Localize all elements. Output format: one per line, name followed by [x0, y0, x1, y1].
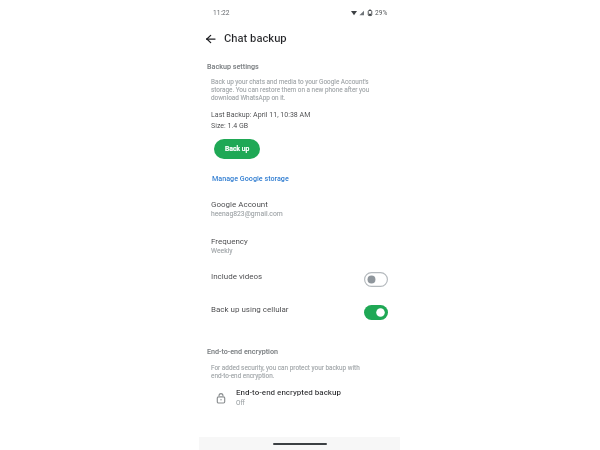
- staticText: heenag823@gmail.com: [211, 210, 283, 218]
- button[interactable]: Frequency: [199, 236, 400, 256]
- staticText: Off: [236, 399, 245, 407]
- staticText: 11:22: [213, 9, 230, 17]
- button[interactable]: Manage Google storage: [212, 174, 289, 182]
- staticText: Weekly: [211, 247, 233, 255]
- staticText: 29%: [375, 9, 388, 17]
- staticText: Include videos: [211, 272, 364, 281]
- staticText: Last Backup: April 11, 10:38 AM: [211, 110, 311, 118]
- staticText: Back up your chats and media to your Goo…: [211, 78, 371, 102]
- button[interactable]: Include videos: [199, 271, 400, 287]
- button[interactable]: Google Account: [199, 199, 400, 219]
- staticText: Chat backup: [224, 32, 287, 45]
- staticText: Google Account: [211, 200, 268, 209]
- staticText: End-to-end encryption: [207, 347, 279, 355]
- staticText: Manage Google storage: [212, 174, 289, 182]
- button[interactable]: Back up using cellular: [199, 304, 400, 320]
- button[interactable]: Back up: [214, 139, 260, 159]
- staticText: Back up using cellular: [211, 305, 364, 314]
- button[interactable]: Back: [200, 28, 221, 49]
- staticText: Frequency: [211, 237, 248, 246]
- staticText: For added security, you can protect your…: [211, 364, 366, 380]
- button[interactable]: End-to-end encrypted backup: [199, 387, 400, 408]
- staticText: Back up: [225, 145, 250, 153]
- staticText: Backup settings: [207, 62, 259, 70]
- staticText: Size: 1.4 GB: [211, 121, 249, 129]
- staticText: End-to-end encrypted backup: [236, 388, 341, 397]
